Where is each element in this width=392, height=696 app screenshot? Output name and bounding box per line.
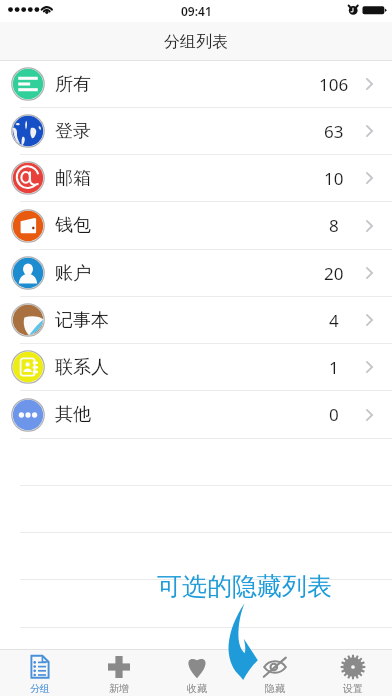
button[interactable]: 记事本 bbox=[0, 297, 392, 344]
staticText: 106 bbox=[319, 73, 349, 96]
staticText: 钱包 bbox=[55, 214, 91, 237]
staticText: 09:41 bbox=[181, 3, 212, 19]
button[interactable]: 联系人 bbox=[0, 344, 392, 391]
staticText: 收藏 bbox=[187, 682, 207, 695]
staticText: 20 bbox=[324, 262, 344, 285]
staticText: 登录 bbox=[55, 120, 91, 143]
button[interactable]: 新增 bbox=[79, 650, 158, 696]
button[interactable]: 设置 bbox=[314, 650, 392, 696]
staticText: 新增 bbox=[109, 682, 129, 695]
staticText: 分组 bbox=[30, 682, 50, 695]
button[interactable]: 其他 bbox=[0, 391, 392, 439]
button[interactable]: 账户 bbox=[0, 250, 392, 297]
button[interactable]: 登录 bbox=[0, 108, 392, 155]
staticText: 可选的隐藏列表 bbox=[157, 571, 332, 602]
staticText: 分组列表 bbox=[164, 32, 228, 52]
staticText: 隐藏 bbox=[265, 682, 285, 695]
staticText: 1 bbox=[329, 356, 339, 379]
button[interactable]: 钱包 bbox=[0, 202, 392, 250]
staticText: 设置 bbox=[343, 682, 363, 695]
button[interactable]: 所有 bbox=[0, 61, 392, 108]
button[interactable]: 收藏 bbox=[158, 650, 236, 696]
staticText: 联系人 bbox=[55, 356, 109, 379]
button[interactable]: 隐藏 bbox=[236, 650, 314, 696]
staticText: 其他 bbox=[55, 403, 91, 426]
staticText: 邮箱 bbox=[55, 167, 91, 190]
staticText: 0 bbox=[329, 403, 339, 426]
button[interactable]: 分组 bbox=[0, 650, 79, 696]
staticText: 记事本 bbox=[55, 309, 109, 332]
staticText: 账户 bbox=[55, 262, 91, 285]
staticText: 8 bbox=[329, 214, 339, 237]
button[interactable]: 邮箱 bbox=[0, 155, 392, 202]
staticText: 所有 bbox=[55, 73, 91, 96]
staticText: 10 bbox=[324, 167, 344, 190]
staticText: 63 bbox=[324, 120, 344, 143]
staticText: 4 bbox=[329, 309, 339, 332]
